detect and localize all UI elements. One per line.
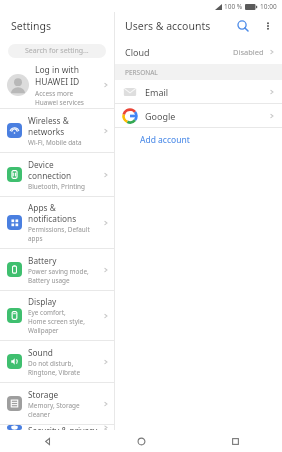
button[interactable]: Recent apps — [188, 430, 282, 452]
staticText: Wireless & — [28, 115, 69, 126]
button[interactable]: Search for setting... — [0, 40, 114, 62]
staticText: Storage — [28, 389, 59, 400]
staticText: Sound — [28, 347, 53, 358]
button[interactable]: Email — [115, 80, 282, 103]
staticText: networks — [28, 126, 65, 137]
staticText: connection — [28, 170, 72, 181]
staticText: Apps & — [28, 202, 56, 213]
button[interactable]: Storage — [0, 383, 114, 424]
button[interactable]: Search — [230, 13, 256, 39]
button[interactable]: Settings — [0, 12, 114, 40]
staticText: Memory, Storage — [28, 401, 80, 410]
staticText: Ringtone, Vibrate — [28, 368, 81, 377]
staticText: Home screen style, — [28, 317, 85, 326]
staticText: Log in with — [35, 64, 79, 76]
staticText: Search for setting... — [25, 46, 89, 56]
button[interactable]: Cloud — [115, 40, 282, 64]
staticText: Display — [28, 296, 57, 307]
button[interactable]: Wireless & — [0, 109, 114, 152]
button[interactable]: Security & privacy — [0, 425, 114, 430]
staticText: Eye comfort, — [28, 308, 66, 317]
staticText: Power saving mode, — [28, 267, 89, 276]
staticText: 100 % — [224, 2, 243, 11]
staticText: Access more — [35, 89, 74, 98]
staticText: Users & accounts — [125, 19, 211, 33]
staticText: Security & privacy — [28, 425, 98, 430]
staticText: Disabled — [233, 47, 264, 57]
staticText: Huawei services — [35, 98, 84, 107]
staticText: Cloud — [125, 46, 150, 58]
button[interactable]: Display — [0, 291, 114, 340]
button[interactable]: Device — [0, 153, 114, 196]
staticText: HUAWEI ID — [35, 76, 80, 88]
button[interactable]: Add account — [115, 128, 282, 152]
button[interactable]: Sound — [0, 341, 114, 382]
staticText: apps — [28, 234, 43, 243]
staticText: Email — [145, 86, 169, 98]
staticText: Do not disturb, — [28, 359, 74, 368]
button[interactable]: More options — [256, 14, 280, 38]
staticText: Battery usage — [28, 276, 70, 285]
staticText: Add account — [140, 134, 190, 146]
button[interactable]: Google — [115, 104, 282, 127]
button[interactable]: Battery — [0, 249, 114, 290]
button[interactable]: Home — [94, 430, 188, 452]
staticText: Bluetooth, Printing — [28, 182, 85, 191]
button[interactable]: Back — [0, 430, 94, 452]
button[interactable]: Apps & — [0, 197, 114, 248]
staticText: cleaner — [28, 410, 51, 419]
staticText: Wallpaper — [28, 326, 59, 335]
staticText: Settings — [11, 19, 51, 33]
staticText: Device — [28, 159, 54, 170]
staticText: Permissions, Default — [28, 225, 90, 234]
staticText: Wi-Fi, Mobile data — [28, 138, 82, 147]
staticText: Battery — [28, 255, 57, 266]
button[interactable]: Log in with — [0, 62, 114, 108]
staticText: Google — [145, 110, 176, 122]
staticText: 10:00 — [260, 2, 277, 11]
staticText: notifications — [28, 213, 77, 224]
staticText: PERSONAL — [125, 68, 158, 77]
